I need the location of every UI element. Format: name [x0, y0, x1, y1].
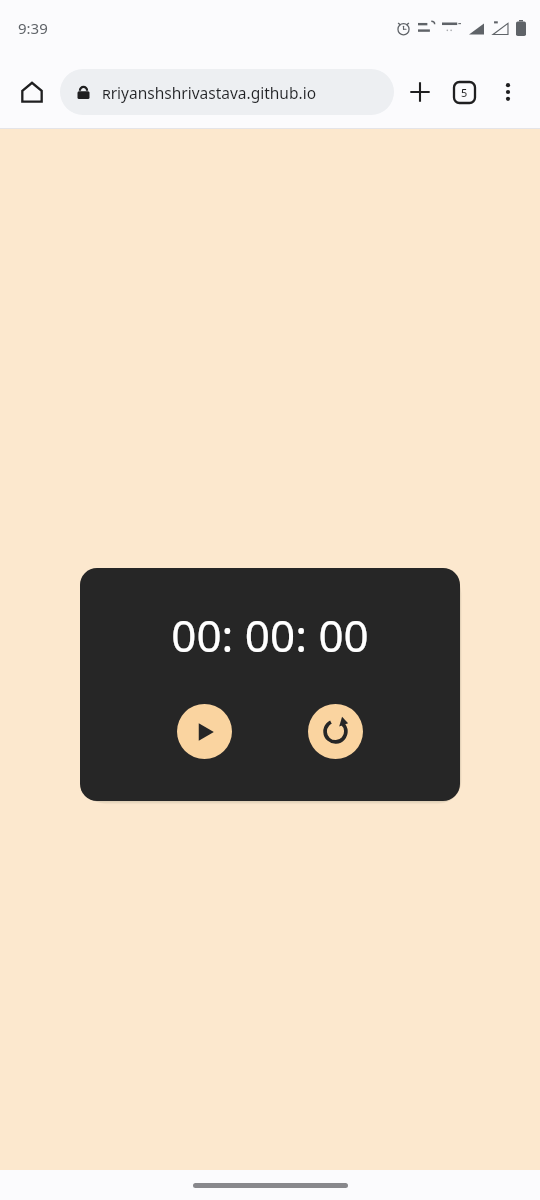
button[interactable]: More options	[486, 70, 530, 114]
button[interactable]: Start timer	[177, 704, 232, 759]
button[interactable]: Home	[10, 70, 54, 114]
staticText: 00: 00: 00	[171, 605, 369, 665]
button[interactable]: Switch tabs, 5 open	[442, 70, 486, 114]
staticText: 5	[461, 85, 468, 100]
button[interactable]: Reset timer	[308, 704, 363, 759]
button[interactable]: ʀriyanshshrivastava.github.io	[60, 69, 394, 115]
staticText: ʀriyanshshrivastava.github.io	[102, 82, 317, 103]
staticText: 9:39	[18, 18, 48, 38]
button[interactable]: New tab	[398, 70, 442, 114]
